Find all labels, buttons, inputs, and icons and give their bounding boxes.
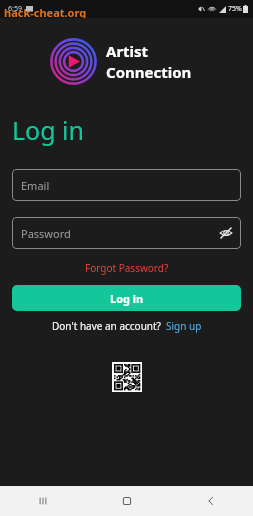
button[interactable]: Back [169, 486, 253, 516]
button[interactable]: Sign up [166, 319, 202, 333]
staticText: Log in [110, 291, 144, 306]
button[interactable]: QR code [112, 362, 142, 392]
staticText: Connection [106, 62, 192, 82]
staticText: 75% [228, 4, 242, 14]
button[interactable]: Show password [218, 225, 234, 241]
button[interactable]: Recents [0, 486, 85, 516]
button[interactable]: Log in [12, 285, 241, 311]
button[interactable]: Home [85, 486, 169, 516]
button[interactable]: Email [12, 169, 241, 201]
staticText: Forgot Password? [85, 261, 169, 275]
staticText: Log in [12, 113, 85, 147]
staticText: hack-cheat.org [4, 5, 87, 18]
staticText: Artist [106, 41, 149, 61]
staticText: 6:59 [8, 4, 22, 14]
button[interactable]: Password [12, 217, 241, 249]
staticText: Don't have an account? [52, 319, 161, 333]
button[interactable]: Forgot Password? [0, 261, 253, 275]
staticText: Email [21, 178, 50, 193]
staticText: Password [21, 226, 71, 241]
staticText: Sign up [166, 319, 202, 333]
